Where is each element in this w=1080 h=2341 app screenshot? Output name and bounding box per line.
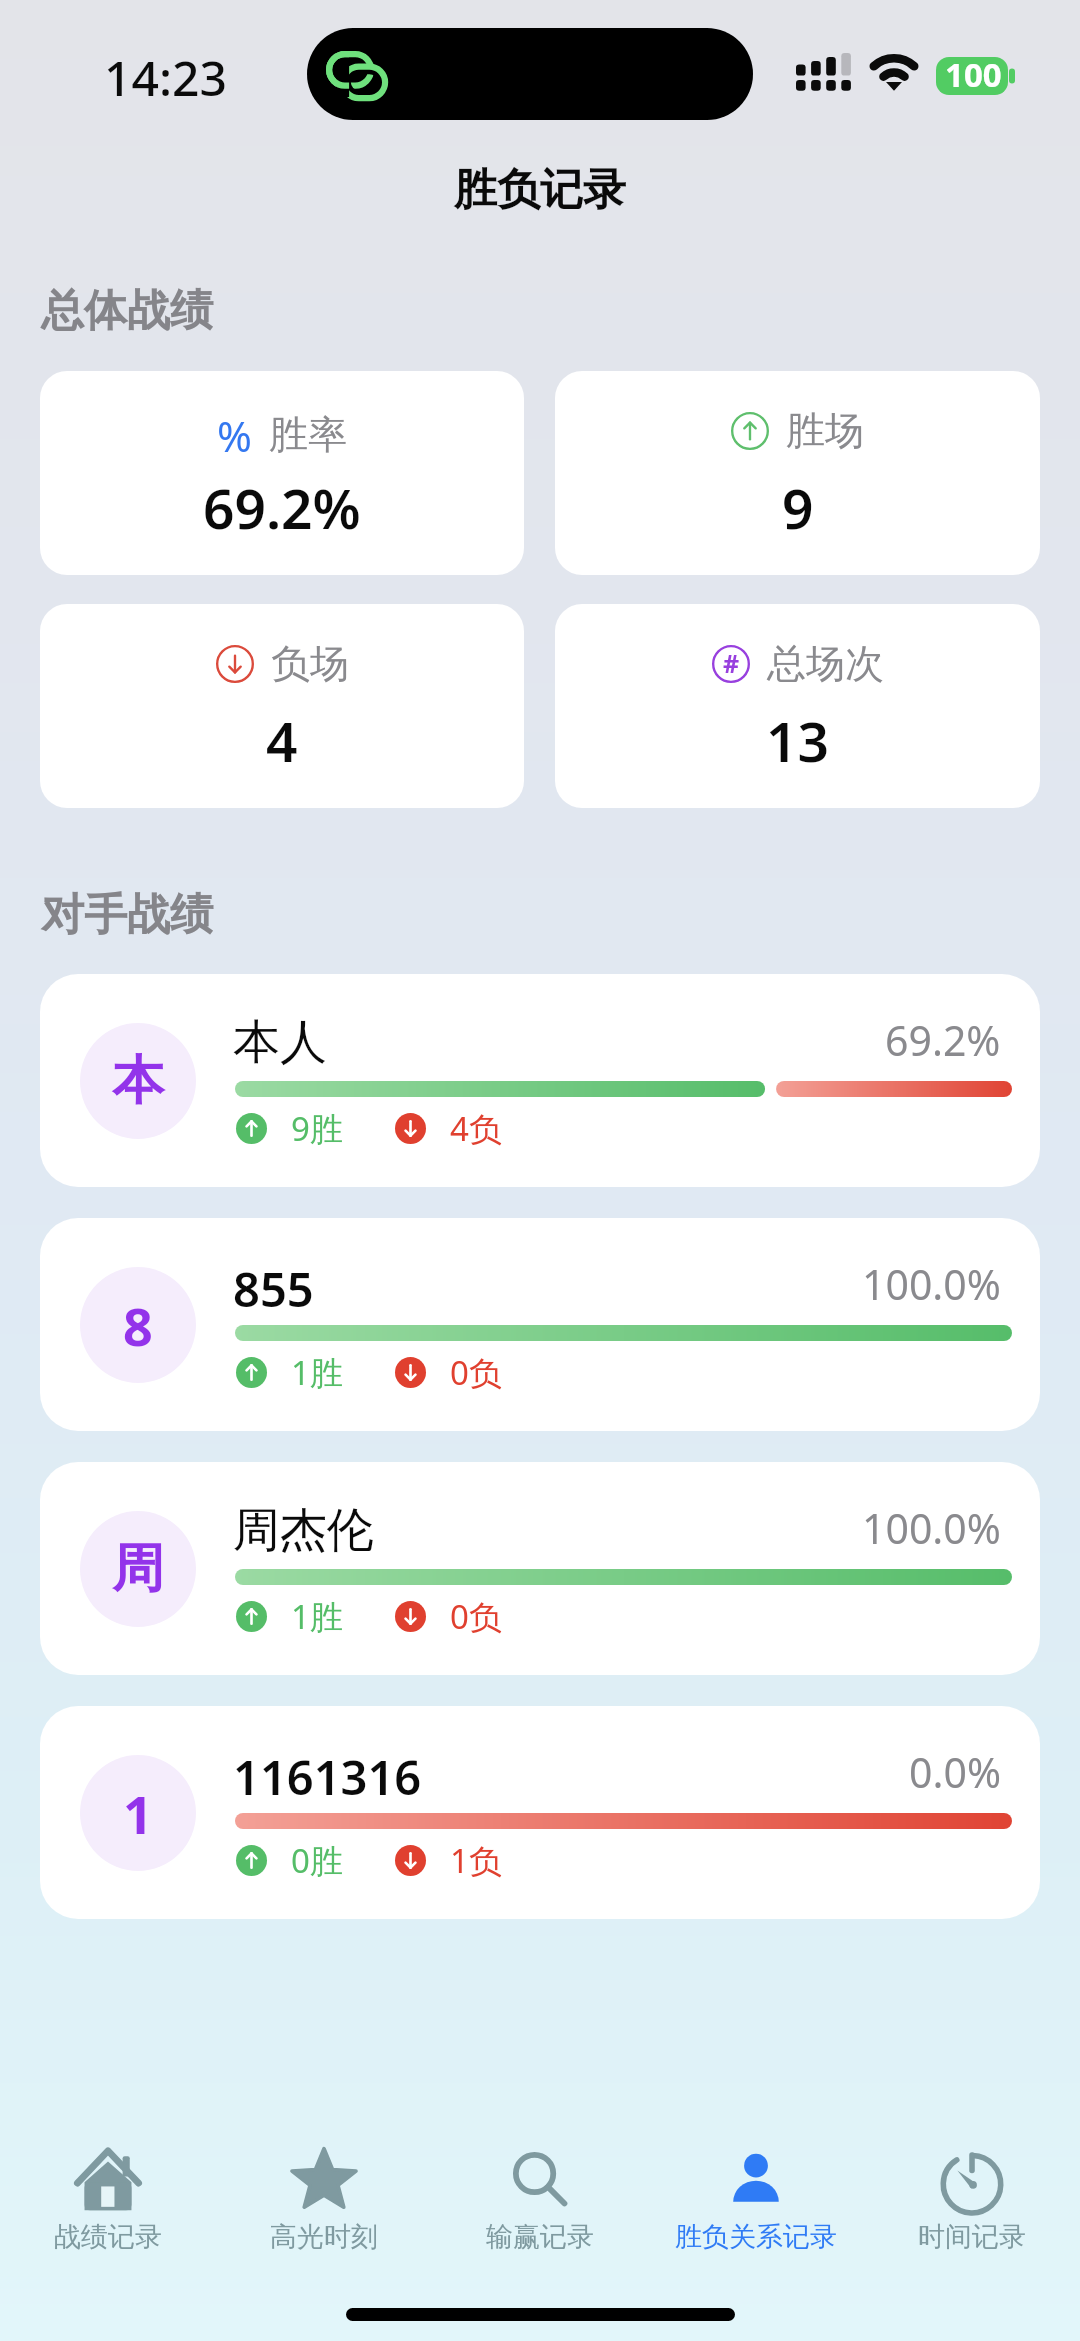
staticText: 1胜 [291, 1594, 343, 1639]
button[interactable]: 8 [40, 1218, 1040, 1431]
staticText: 14:23 [104, 45, 227, 110]
staticText: 周 [112, 1536, 164, 1602]
staticText: 100.0% [862, 1256, 1001, 1312]
staticText: 胜负记录 [454, 163, 626, 217]
button[interactable]: 周 [40, 1462, 1040, 1675]
staticText: 0负 [450, 1350, 502, 1395]
staticText: 胜场 [786, 406, 864, 455]
staticText: 对手战绩 [41, 888, 213, 942]
button[interactable]: 高光时刻 [216, 2115, 432, 2291]
staticText: 4 [266, 703, 298, 778]
staticText: 855 [233, 1257, 314, 1321]
staticText: 周杰伦 [233, 1501, 374, 1560]
staticText: 100 [945, 52, 1002, 97]
staticText: 负场 [271, 639, 349, 688]
staticText: 总体战绩 [41, 284, 213, 338]
staticText: 1 [123, 1778, 153, 1849]
button[interactable]: 胜负关系记录 [648, 2115, 864, 2291]
staticText: 输赢记录 [486, 2220, 594, 2254]
staticText: 0胜 [291, 1838, 343, 1883]
button[interactable]: 负场 [40, 604, 524, 808]
button[interactable]: 本 [40, 974, 1040, 1187]
staticText: 0.0% [909, 1744, 1001, 1800]
staticText: 本人 [233, 1013, 327, 1072]
staticText: 1胜 [291, 1350, 343, 1395]
staticText: 9 [782, 470, 814, 545]
staticText: 9胜 [291, 1106, 343, 1151]
staticText: 69.2% [203, 470, 361, 545]
staticText: 胜负关系记录 [675, 2220, 837, 2254]
staticText: 胜率 [269, 410, 347, 459]
button[interactable]: 胜场 [555, 371, 1040, 575]
button[interactable]: 战绩记录 [0, 2115, 216, 2291]
staticText: 1161316 [233, 1745, 422, 1809]
staticText: % [217, 407, 252, 464]
button[interactable]: 1 [40, 1706, 1040, 1919]
staticText: 高光时刻 [270, 2220, 378, 2254]
button[interactable]: # [555, 604, 1040, 808]
staticText: 1负 [450, 1838, 502, 1883]
staticText: 本 [112, 1048, 164, 1114]
staticText: 时间记录 [918, 2220, 1026, 2254]
staticText: 69.2% [885, 1012, 1001, 1068]
button[interactable]: % [40, 371, 524, 575]
staticText: 8 [123, 1290, 153, 1361]
button[interactable]: 输赢记录 [432, 2115, 648, 2291]
staticText: # [723, 646, 740, 680]
button[interactable]: 时间记录 [864, 2115, 1080, 2291]
staticText: 4负 [450, 1106, 502, 1151]
staticText: 总场次 [767, 639, 884, 688]
staticText: 100.0% [862, 1500, 1001, 1556]
staticText: 战绩记录 [54, 2220, 162, 2254]
staticText: 13 [766, 703, 829, 778]
staticText: 0负 [450, 1594, 502, 1639]
